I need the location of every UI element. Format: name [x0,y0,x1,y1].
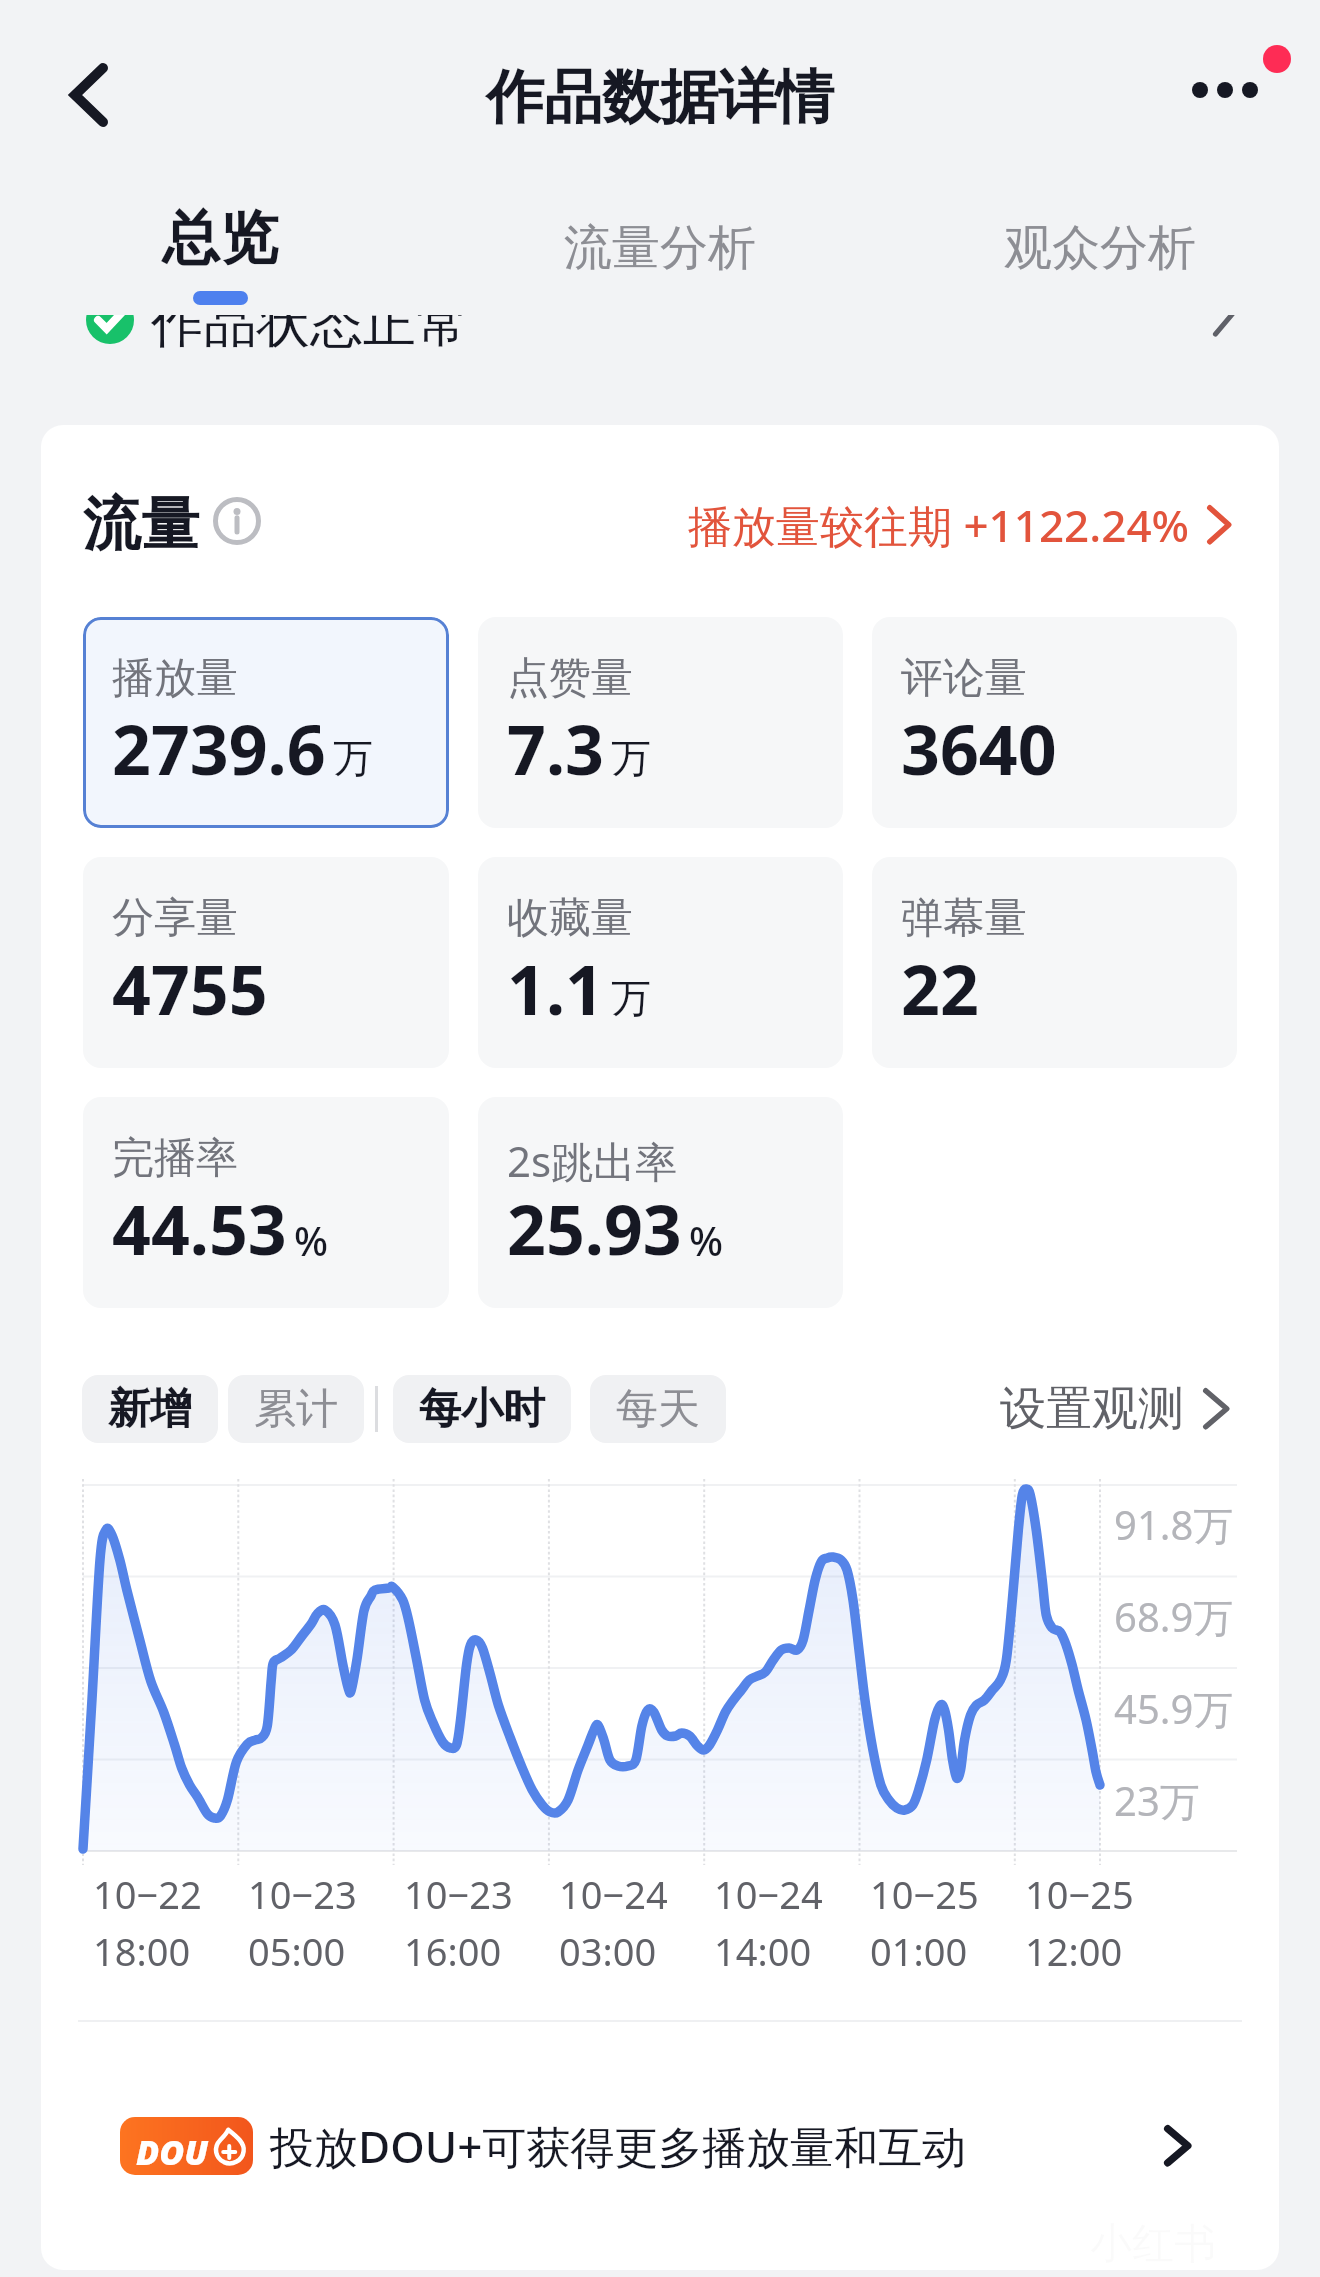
staticText: 68.9万 [1114,1589,1234,1644]
button[interactable]: 新增 [82,1375,218,1443]
staticText: 23万 [1114,1773,1200,1828]
staticText: 05:00 [248,1925,346,1977]
staticText: 播放量 [112,652,238,705]
staticText: 91.8万 [1114,1497,1234,1552]
staticText: 万 [611,973,651,1023]
staticText: 45.9万 [1114,1681,1234,1736]
button[interactable]: More options [1170,40,1300,170]
button[interactable]: 设置观测 [1000,1380,1230,1438]
button[interactable]: 2s跳出率 [478,1097,843,1308]
button[interactable]: 累计 [228,1375,364,1443]
staticText: 万 [333,733,373,783]
staticText: 3640 [901,702,1057,795]
staticText: 评论量 [901,652,1027,705]
staticText: 完播率 [112,1132,238,1185]
staticText: 14:00 [714,1925,812,1977]
staticText: 10−24 [559,1868,668,1920]
staticText: 10−25 [1025,1868,1134,1920]
staticText: 流量 [83,488,199,561]
button[interactable]: 作品状态正常 [0,315,1320,349]
staticText: 作品状态正常 [151,315,469,349]
button[interactable]: 每天 [590,1375,726,1443]
staticText: 25.93 [507,1182,682,1275]
button[interactable]: 弹幕量 [872,857,1237,1068]
staticText: 03:00 [559,1925,657,1977]
staticText: 1.1 [507,942,604,1035]
staticText: 收藏量 [507,892,633,945]
staticText: 分享量 [112,892,238,945]
button[interactable]: 收藏量 [478,857,843,1068]
staticText: 设置观测 [1000,1380,1184,1438]
staticText: % [294,1213,329,1267]
button[interactable]: 每小时 [393,1375,571,1443]
staticText: 10−23 [248,1868,357,1920]
staticText: 7.3 [507,702,604,795]
staticText: % [689,1213,724,1267]
button[interactable]: 评论量 [872,617,1237,828]
staticText: 新增 [108,1383,192,1436]
staticText: 2s跳出率 [507,1132,678,1189]
staticText: 10−25 [870,1868,979,1920]
button[interactable]: 点赞量 [478,617,843,828]
staticText: 投放DOU+可获得更多播放量和互动 [270,2116,967,2176]
staticText: 每小时 [419,1383,545,1436]
staticText: 4755 [112,942,268,1035]
staticText: 10−23 [404,1868,513,1920]
button[interactable]: 总览 [0,202,440,312]
staticText: 累计 [254,1383,338,1436]
staticText: 44.53 [112,1182,287,1275]
button[interactable]: 完播率 [83,1097,449,1308]
button[interactable]: Back [45,50,135,140]
staticText: 10−24 [714,1868,823,1920]
staticText: 2739.6 [112,702,326,795]
staticText: 流量分析 [564,218,756,278]
staticText: 每天 [616,1383,700,1436]
staticText: 10−22 [93,1868,202,1920]
staticText: 01:00 [870,1925,968,1977]
button[interactable]: DOU [41,2071,1279,2221]
staticText: 18:00 [93,1925,191,1977]
staticText: 万 [611,733,651,783]
button[interactable]: 流量分析 [440,202,880,312]
button[interactable]: 分享量 [83,857,449,1068]
staticText: 12:00 [1025,1925,1123,1977]
staticText: 播放量较往期 +1122.24% [688,495,1190,555]
staticText: 点赞量 [507,652,633,705]
staticText: 弹幕量 [901,892,1027,945]
button[interactable]: 播放量 [83,617,449,828]
button[interactable]: 播放量较往期 +1122.24% [688,495,1232,555]
staticText: 作品数据详情 [486,61,834,134]
staticText: 16:00 [404,1925,502,1977]
staticText: DOU [136,2129,209,2175]
staticText: 22 [901,942,979,1035]
staticText: 总览 [162,202,278,275]
staticText: 观众分析 [1004,218,1196,278]
button[interactable]: 观众分析 [880,202,1320,312]
